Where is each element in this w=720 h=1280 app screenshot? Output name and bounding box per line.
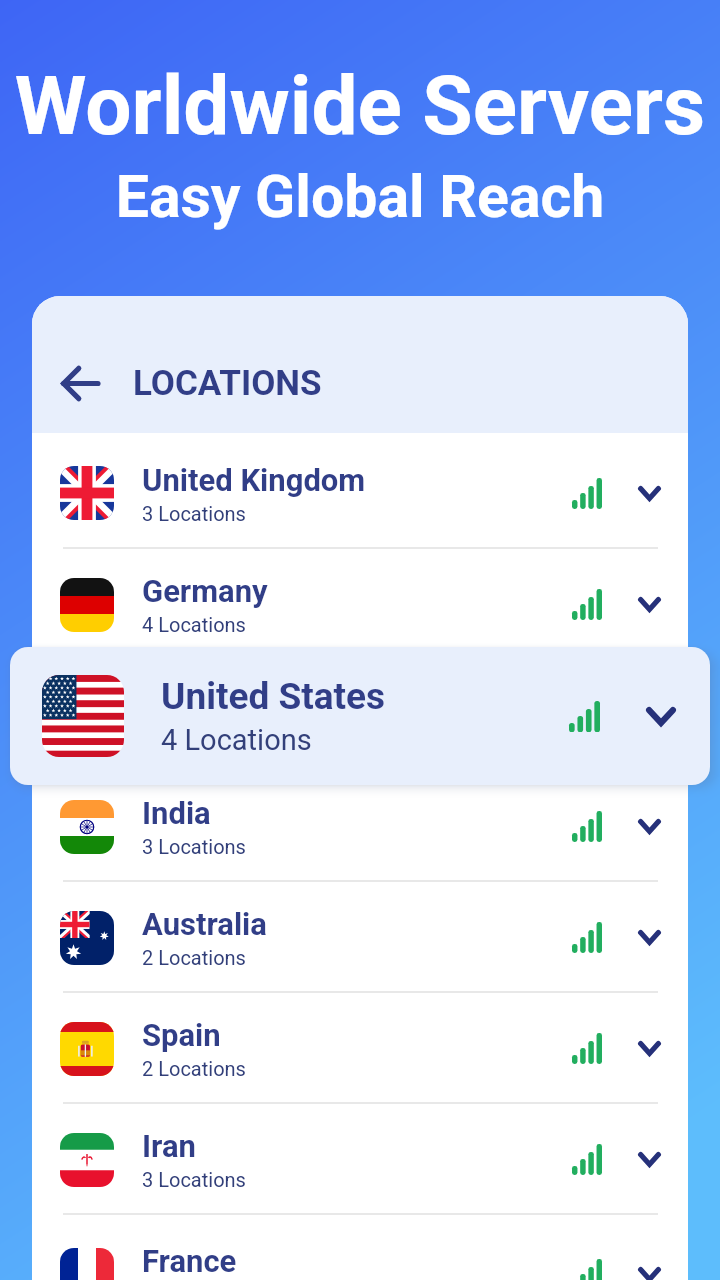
staticText: 2 Locations	[142, 1057, 246, 1080]
button[interactable]: Australia	[32, 882, 688, 993]
staticText: 4 Locations	[161, 723, 312, 757]
button[interactable]: India	[32, 771, 688, 882]
staticText: 4 Locations	[142, 613, 246, 636]
staticText: LOCATIONS	[133, 363, 322, 404]
staticText: Australia	[142, 906, 267, 942]
staticText: 3 Locations	[142, 502, 246, 525]
button[interactable]: Back	[50, 353, 110, 413]
button[interactable]: Germany	[32, 549, 688, 660]
staticText: Worldwide Servers	[0, 58, 720, 154]
staticText: Iran	[142, 1128, 196, 1164]
staticText: Easy Global Reach	[0, 162, 720, 231]
button[interactable]: Spain	[32, 993, 688, 1104]
button[interactable]: United States	[10, 647, 710, 785]
staticText: 3 Locations	[142, 1168, 246, 1191]
staticText: France	[142, 1243, 237, 1279]
staticText: Spain	[142, 1017, 221, 1053]
button[interactable]: Iran	[32, 1104, 688, 1215]
staticText: Germany	[142, 573, 268, 609]
button[interactable]: France	[32, 1219, 688, 1280]
staticText: United States	[161, 675, 386, 718]
staticText: 3 Locations	[142, 835, 246, 858]
staticText: 2 Locations	[142, 946, 246, 969]
staticText: India	[142, 795, 211, 831]
button[interactable]: United Kingdom	[32, 437, 688, 549]
staticText: United Kingdom	[142, 462, 366, 498]
